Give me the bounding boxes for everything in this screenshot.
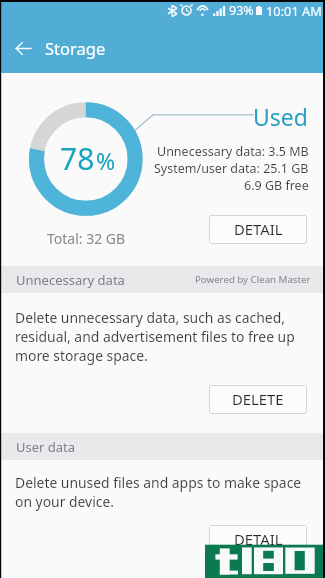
staticText: Used (253, 101, 308, 132)
staticText: DETAIL (234, 529, 283, 549)
staticText: 6.9 GB free (244, 177, 309, 194)
staticText: Total: 32 GB (47, 229, 126, 248)
staticText: 78 (60, 138, 95, 179)
staticText: Delete unused files and apps to make spa… (15, 473, 311, 511)
button[interactable]: DELETE (209, 385, 307, 414)
staticText: 10:01 AM (266, 2, 322, 19)
button[interactable]: DETAIL (209, 525, 307, 554)
staticText: Powered by Clean Master (195, 273, 311, 286)
staticText: Unnecessary data: 3.5 MB (157, 143, 309, 160)
button[interactable]: Back (0, 25, 46, 71)
staticText: % (96, 145, 116, 176)
staticText: Delete unnecessary data, such as cached,… (15, 308, 307, 365)
button[interactable]: DETAIL (209, 215, 307, 244)
staticText: Unnecessary data (16, 271, 125, 289)
staticText: User data (16, 438, 76, 456)
staticText: DETAIL (234, 219, 283, 239)
staticText: Storage (45, 37, 106, 59)
staticText: 93% (229, 2, 254, 19)
staticText: System/user data: 25.1 GB (154, 160, 309, 177)
staticText: DELETE (232, 389, 284, 409)
